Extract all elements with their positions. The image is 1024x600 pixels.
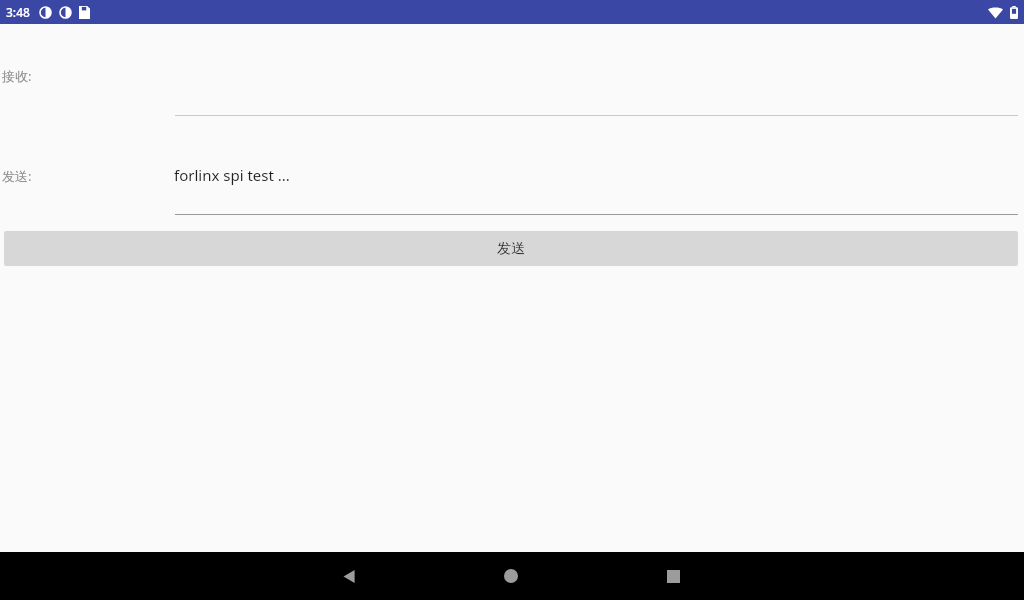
staticText: 发送: <box>2 167 32 185</box>
button[interactable]: 发送 <box>4 231 1018 266</box>
staticText: 3:48 <box>6 4 30 20</box>
staticText: forlinx spi test ... <box>174 165 290 185</box>
button[interactable]: Back <box>329 556 369 596</box>
staticText: 接收: <box>2 67 32 85</box>
staticText: 发送 <box>497 240 525 258</box>
button[interactable]: Recent apps <box>653 556 693 596</box>
button[interactable]: Home <box>491 556 531 596</box>
